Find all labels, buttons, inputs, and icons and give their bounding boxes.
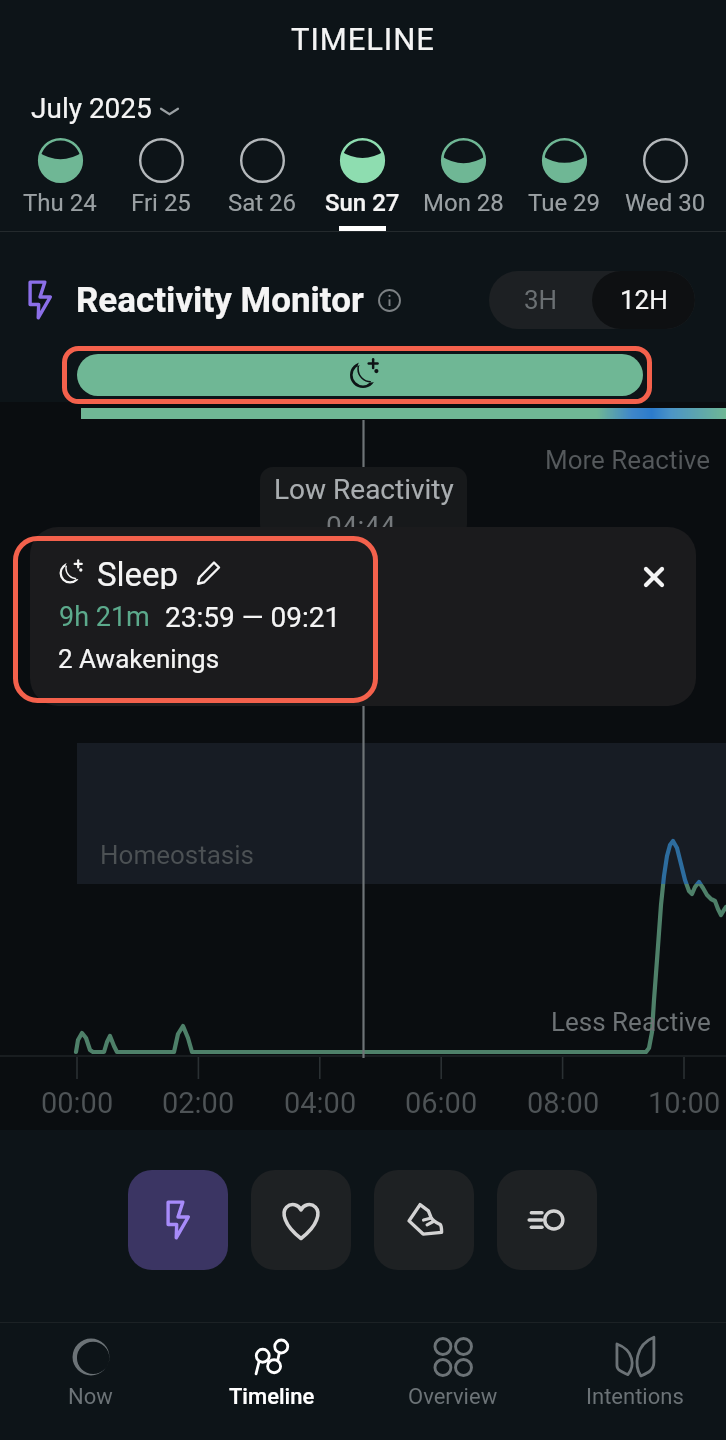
button[interactable]: Intentions bbox=[544, 1323, 726, 1422]
button[interactable]: Timeline bbox=[181, 1323, 362, 1422]
staticText: July 2025 bbox=[31, 92, 152, 125]
staticText: Intentions bbox=[586, 1384, 684, 1410]
staticText: 08:00 bbox=[527, 1086, 600, 1120]
staticText: Tue 29 bbox=[528, 189, 601, 217]
button[interactable]: Overview bbox=[362, 1323, 544, 1422]
staticText: Timeline bbox=[229, 1384, 315, 1410]
staticText: Low Reactivity bbox=[274, 473, 454, 506]
button[interactable]: Activity bbox=[497, 1170, 597, 1270]
button[interactable]: Mon 28 bbox=[413, 138, 513, 226]
button[interactable]: Sleep bbox=[30, 527, 696, 706]
staticText: 00:00 bbox=[41, 1086, 114, 1120]
button[interactable]: Steps bbox=[374, 1170, 474, 1270]
button[interactable]: Tue 29 bbox=[514, 138, 614, 226]
staticText: Sat 26 bbox=[228, 189, 297, 217]
button[interactable]: 3H bbox=[489, 271, 592, 329]
staticText: Fri 25 bbox=[131, 189, 191, 217]
staticText: Overview bbox=[408, 1384, 498, 1410]
staticText: Now bbox=[68, 1384, 113, 1410]
button[interactable]: 12H bbox=[592, 271, 695, 329]
staticText: 9h 21m bbox=[59, 601, 150, 633]
staticText: 04:44 bbox=[326, 510, 396, 543]
staticText: 06:00 bbox=[405, 1086, 478, 1120]
staticText: Mon 28 bbox=[423, 189, 504, 217]
button[interactable]: Wed 30 bbox=[615, 138, 715, 226]
button[interactable]: Close bbox=[624, 547, 684, 607]
staticText: 02:00 bbox=[162, 1086, 235, 1120]
staticText: Less Reactive bbox=[551, 1007, 711, 1037]
staticText: Sun 27 bbox=[325, 189, 400, 217]
staticText: 04:00 bbox=[284, 1086, 357, 1120]
staticText: Thu 24 bbox=[23, 189, 97, 217]
staticText: Homeostasis bbox=[100, 840, 255, 870]
button[interactable]: Now bbox=[0, 1323, 181, 1422]
button[interactable]: Sat 26 bbox=[212, 138, 312, 226]
staticText: Reactivity Monitor bbox=[76, 280, 364, 321]
button[interactable]: Heart rate bbox=[251, 1170, 351, 1270]
staticText: 12H bbox=[620, 285, 668, 315]
other: Info bbox=[378, 289, 401, 312]
button[interactable]: Edit bbox=[196, 560, 221, 585]
staticText: 23:59 — 09:21 bbox=[165, 601, 341, 634]
button[interactable]: Thu 24 bbox=[10, 138, 110, 226]
button[interactable]: Reactivity bbox=[128, 1170, 228, 1270]
button[interactable]: Fri 25 bbox=[111, 138, 211, 226]
staticText: Wed 30 bbox=[625, 189, 706, 217]
staticText: 2 Awakenings bbox=[58, 644, 220, 674]
staticText: Sleep bbox=[97, 555, 179, 589]
button[interactable]: Sun 27 bbox=[312, 138, 412, 231]
button[interactable]: July 2025 bbox=[31, 86, 178, 130]
staticText: 3H bbox=[524, 285, 558, 315]
staticText: More Reactive bbox=[545, 445, 710, 475]
staticText: TIMELINE bbox=[291, 21, 435, 57]
staticText: 10:00 bbox=[648, 1086, 721, 1120]
